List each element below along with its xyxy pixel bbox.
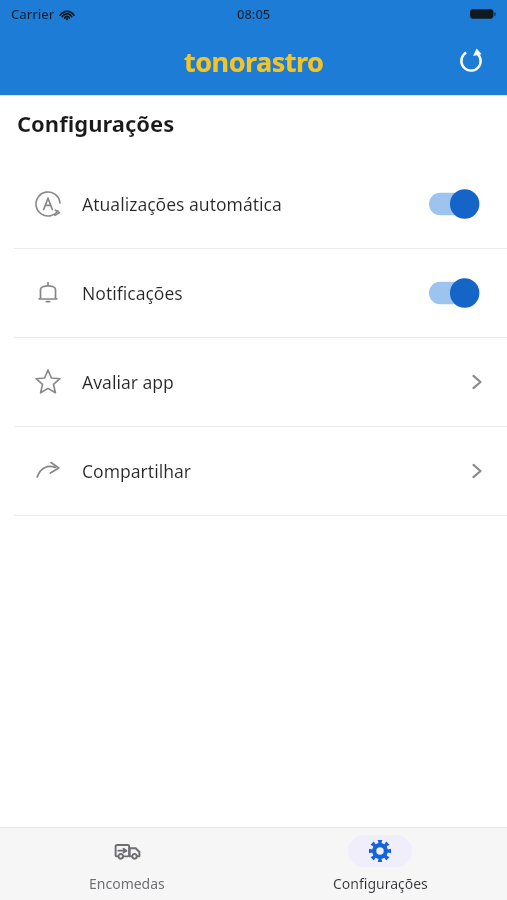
button[interactable]: Ativado bbox=[429, 188, 485, 220]
staticText: Avaliar app bbox=[82, 370, 174, 394]
button[interactable]: Compartilhar bbox=[0, 427, 507, 515]
button[interactable]: Avaliar app bbox=[0, 338, 507, 426]
staticText: Compartilhar bbox=[82, 459, 192, 483]
button[interactable]: Notificações bbox=[0, 249, 507, 337]
staticText: 08:05 bbox=[237, 5, 271, 23]
staticText: Notificações bbox=[82, 281, 183, 305]
staticText: Configurações bbox=[333, 874, 428, 893]
staticText: Configurações bbox=[17, 108, 175, 138]
button[interactable]: Configurações bbox=[253, 828, 507, 900]
button[interactable]: Encomedas bbox=[0, 828, 253, 900]
staticText: Encomedas bbox=[89, 874, 165, 893]
button[interactable]: Ativado bbox=[429, 277, 485, 309]
button[interactable]: Atualizações automática bbox=[0, 160, 507, 248]
staticText: Carrier bbox=[11, 5, 55, 23]
staticText: tonorastro bbox=[184, 43, 324, 80]
button[interactable]: Atualizar bbox=[451, 41, 491, 81]
staticText: Atualizações automática bbox=[82, 192, 282, 216]
